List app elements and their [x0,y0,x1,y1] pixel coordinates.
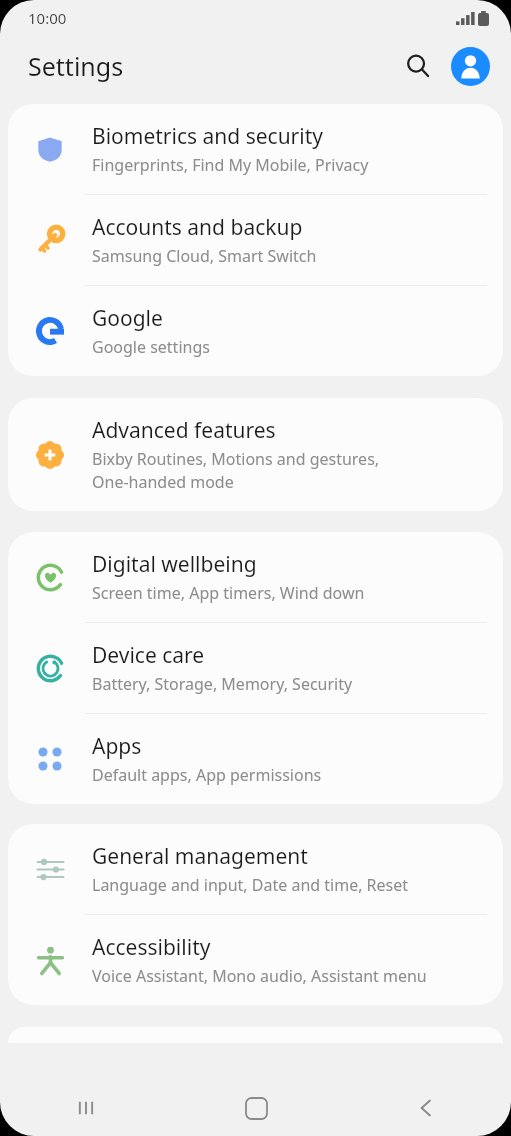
button[interactable]: Recents [0,1080,171,1136]
staticText: Samsung Cloud, Smart Switch [92,245,317,267]
staticText: Digital wellbeing [92,550,257,579]
button[interactable]: Account [447,43,493,89]
staticText: Google settings [92,336,210,358]
button[interactable]: Accessibility [8,915,503,1005]
staticText: Biometrics and security [92,122,323,151]
staticText: Fingerprints, Find My Mobile, Privacy [92,154,369,176]
staticText: Voice Assistant, Mono audio, Assistant m… [92,965,427,987]
staticText: Default apps, App permissions [92,764,322,786]
staticText: Bixby Routines, Motions and gestures, On… [92,448,380,493]
button[interactable]: Device care [8,623,503,714]
staticText: Settings [28,49,124,83]
button[interactable]: Search [395,43,441,89]
button[interactable]: Accounts and backup [8,195,503,286]
button[interactable]: General management [8,824,503,915]
staticText: Battery, Storage, Memory, Security [92,673,353,695]
button[interactable]: Back [341,1080,511,1136]
button[interactable]: Apps [8,714,503,804]
staticText: 10:00 [28,8,67,28]
button[interactable]: Biometrics and security [8,104,503,195]
staticText: Language and input, Date and time, Reset [92,874,409,896]
staticText: Google [92,304,163,333]
staticText: General management [92,842,308,871]
button[interactable]: Digital wellbeing [8,532,503,623]
staticText: Device care [92,641,205,670]
staticText: Accounts and backup [92,213,303,242]
staticText: Advanced features [92,416,276,445]
button[interactable]: Google [8,286,503,376]
button[interactable]: Home [171,1080,341,1136]
staticText: Screen time, App timers, Wind down [92,582,365,604]
button[interactable]: Advanced features [8,398,503,511]
staticText: Accessibility [92,933,211,962]
staticText: Apps [92,732,142,761]
